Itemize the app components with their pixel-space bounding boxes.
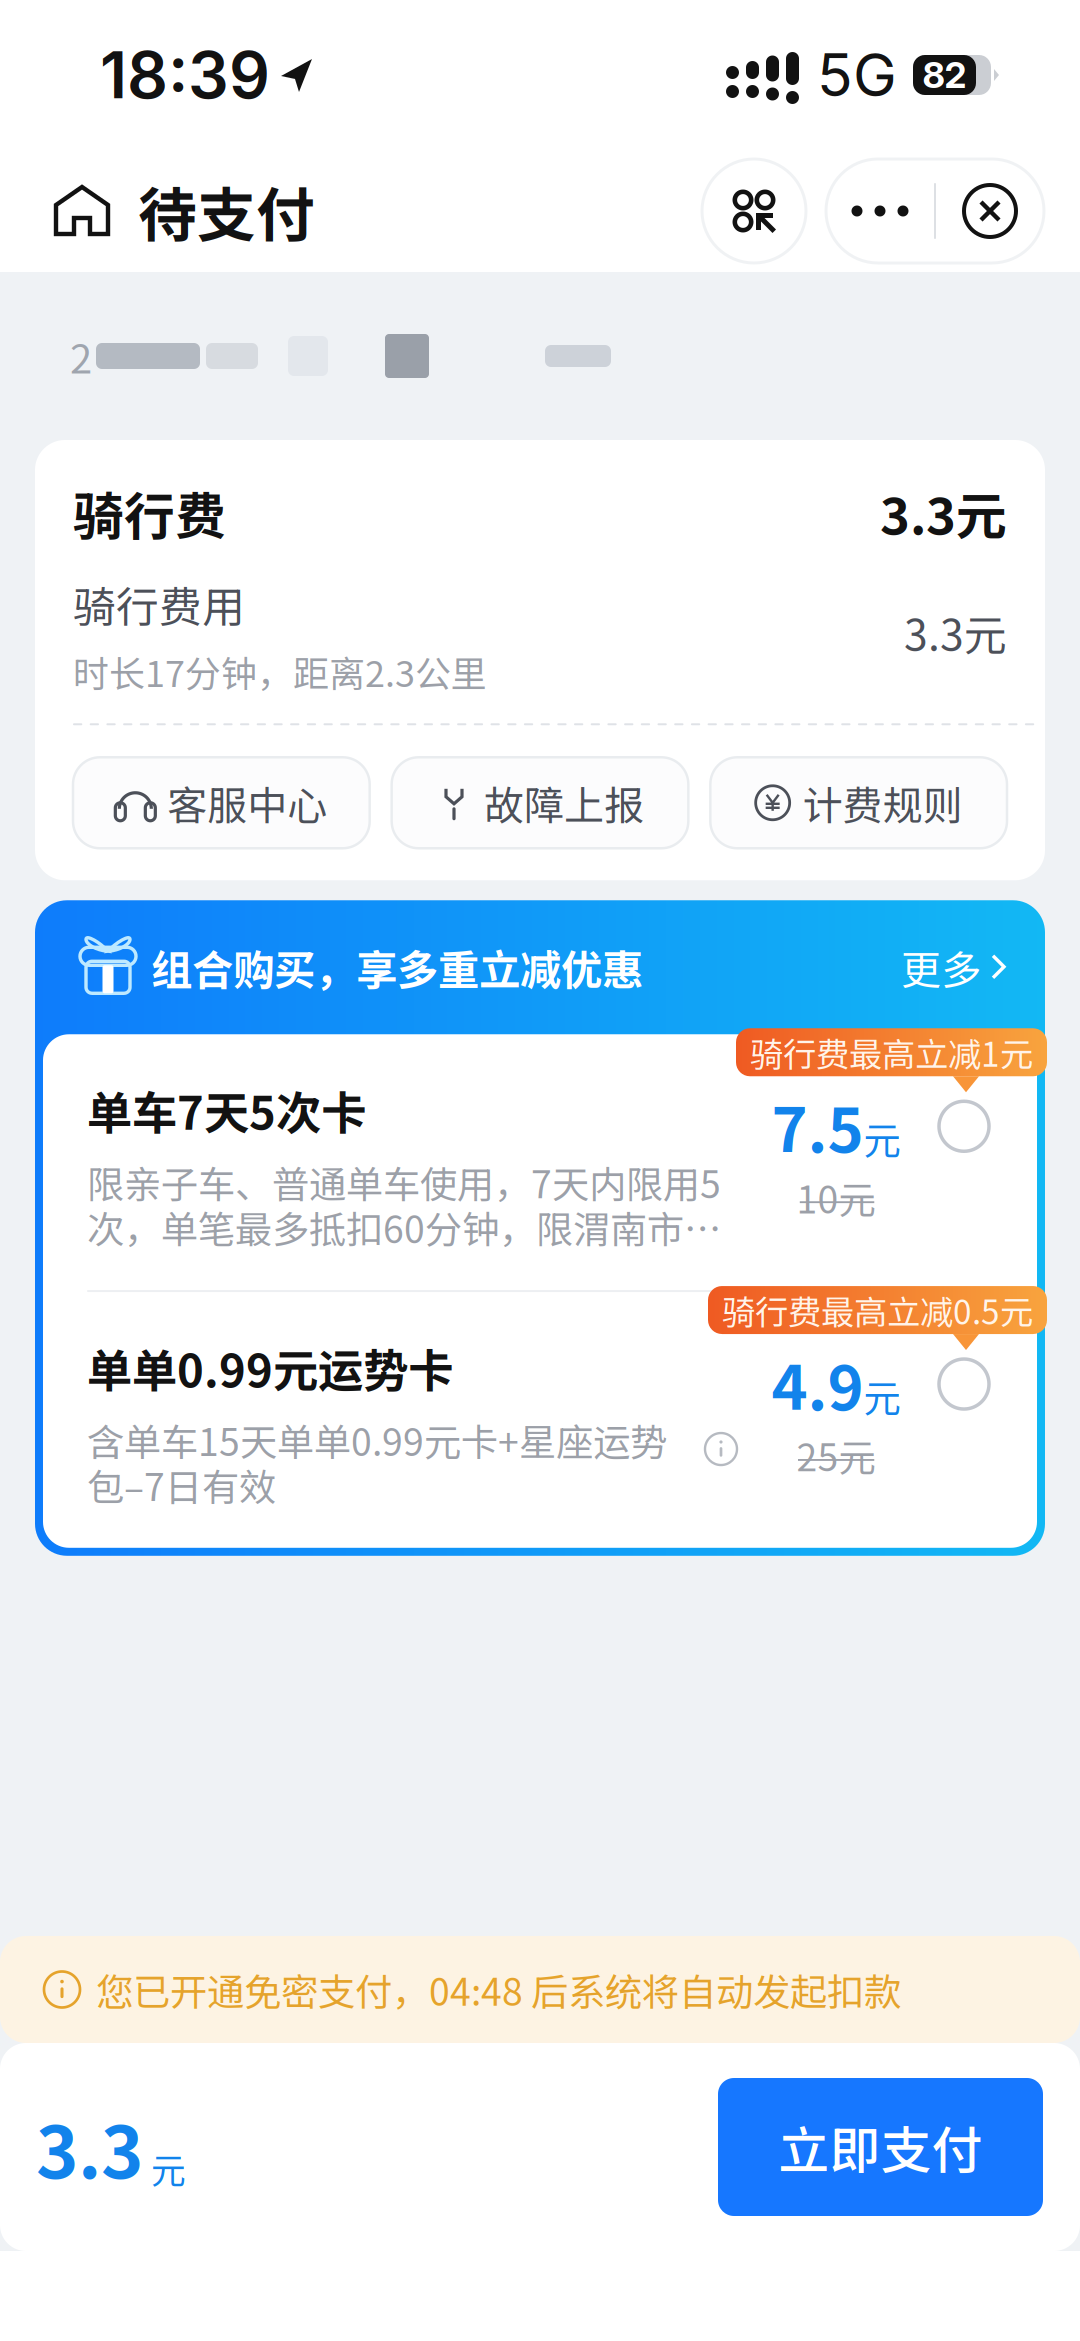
staticText: 10元 (796, 1170, 875, 1224)
staticText: 骑行费用 (73, 573, 245, 635)
button[interactable]: 立即支付 (718, 2078, 1043, 2216)
staticText: 元 (151, 2143, 186, 2193)
staticText: 3.3元 (904, 601, 1007, 663)
button[interactable]: Close (936, 159, 1044, 263)
staticText: 元 (863, 1369, 900, 1423)
staticText: 待支付 (138, 168, 315, 253)
staticText: 组合购买，享多重立减优惠 (151, 937, 643, 997)
staticText: 3.3 (36, 2095, 143, 2199)
staticText: 5G (817, 39, 897, 110)
staticText: 立即支付 (778, 2110, 982, 2184)
staticText: 元 (863, 1111, 900, 1165)
staticText: 单单0.99元运势卡 (87, 1335, 453, 1401)
button[interactable]: Mini program panel (702, 159, 806, 263)
button[interactable]: 客服中心 (73, 757, 370, 848)
staticText: 更多 (901, 938, 981, 996)
staticText: 骑行费 (73, 476, 226, 549)
staticText: 计费规则 (803, 774, 963, 832)
staticText: 3.3元 (880, 476, 1007, 549)
staticText: 单车7天5次卡 (87, 1077, 366, 1143)
button[interactable]: More (826, 159, 934, 263)
button[interactable]: 计费规则 (710, 757, 1007, 848)
staticText: 客服中心 (167, 774, 327, 832)
staticText: 7.5 (771, 1081, 863, 1170)
staticText: 18:39 (100, 36, 270, 114)
staticText: 时长17分钟，距离2.3公里 (73, 645, 487, 697)
staticText: 含单车15天单单0.99元卡+星座运势包–7日有效 (87, 1413, 667, 1512)
staticText: 骑行费最高立减1元 (750, 1028, 1033, 1076)
staticText: 您已开通免密支付，04:48 后系统将自动发起扣款 (96, 1962, 901, 2017)
staticText: 82 (922, 53, 966, 97)
staticText: 骑行费最高立减0.5元 (722, 1286, 1033, 1334)
staticText: 25元 (796, 1428, 875, 1482)
button[interactable]: 单车7天5次卡 (43, 1034, 1037, 1290)
button[interactable]: 更多 (901, 938, 1007, 996)
staticText: 2 (70, 327, 92, 385)
staticText: 故障上报 (484, 774, 644, 832)
button[interactable]: 单单0.99元运势卡 (43, 1292, 1037, 1548)
staticText: 限亲子车、普通单车使用，7天内限用5次，单笔最多抵扣60分钟，限渭南市使… (87, 1155, 743, 1254)
button[interactable]: 故障上报 (392, 757, 688, 848)
staticText: 4.9 (771, 1339, 863, 1428)
